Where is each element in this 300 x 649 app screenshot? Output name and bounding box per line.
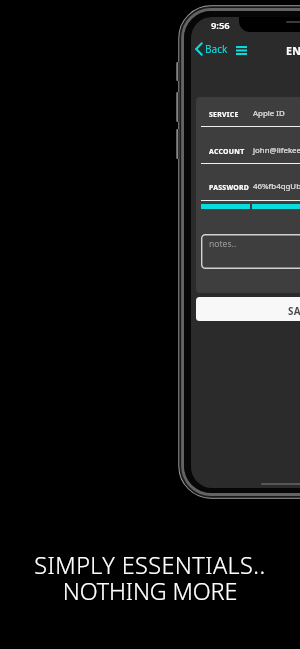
staticText: ENTRY [286, 44, 300, 58]
staticText: 9:56 [211, 19, 230, 32]
button[interactable]: Menu [232, 41, 249, 57]
button[interactable]: SERVICE [196, 97, 300, 134]
staticText: SIMPLY ESSENTIALS.. [0, 549, 300, 581]
staticText: SERVICE [209, 110, 239, 119]
staticText: Back [205, 42, 228, 56]
button[interactable]: notes.. [201, 234, 300, 269]
button[interactable]: Back [193, 40, 224, 58]
staticText: Apple ID [253, 108, 285, 119]
staticText: NOTHING MORE [0, 575, 300, 607]
staticText: ACCOUNT [209, 147, 245, 156]
staticText: SAVE [288, 305, 300, 318]
staticText: notes.. [209, 238, 237, 250]
staticText: PASSWORD [209, 183, 250, 192]
button[interactable]: SAVE [196, 297, 300, 321]
staticText: 46%fb4qgUbx [253, 181, 300, 192]
staticText: john@lifekeeper.io [253, 145, 300, 156]
button[interactable]: ACCOUNT [196, 134, 300, 171]
button[interactable]: PASSWORD [196, 170, 300, 207]
